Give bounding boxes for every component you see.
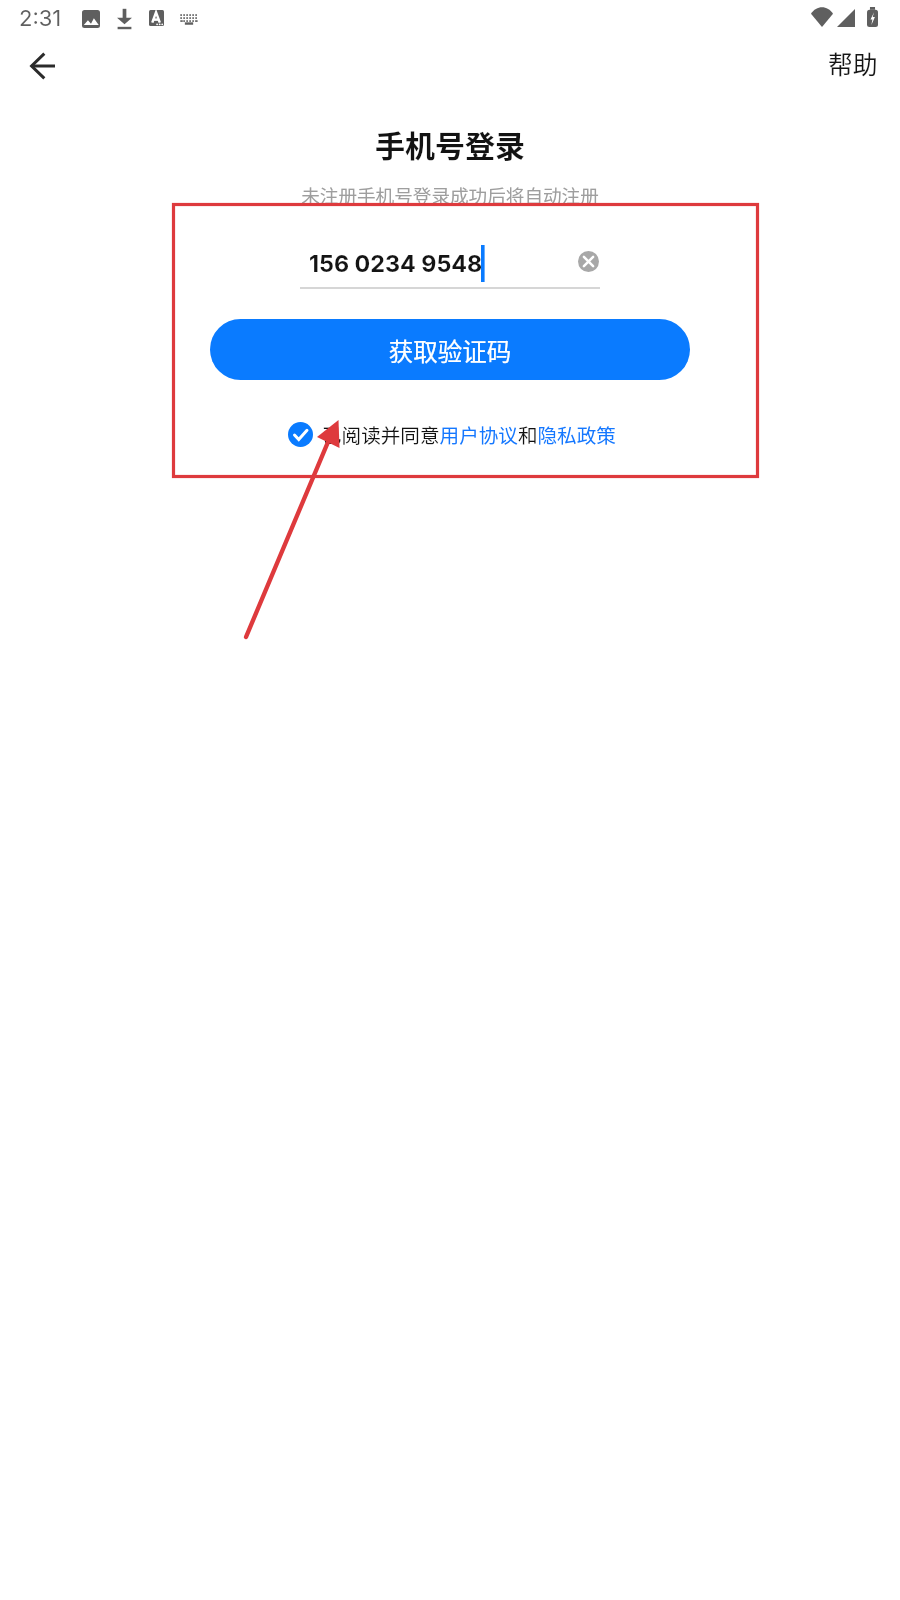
button[interactable]: 获取验证码 xyxy=(210,319,690,380)
staticText: 已阅读并同意用户协议和隐私政策 xyxy=(322,420,616,448)
button[interactable]: 帮助 xyxy=(814,37,888,93)
staticText: 156 0234 9548 xyxy=(309,249,483,277)
staticText: 帮助 xyxy=(828,45,878,81)
button[interactable]: Clear text xyxy=(568,241,608,281)
staticText: 未注册手机号登录成功后将自动注册 xyxy=(0,181,900,208)
button[interactable]: 已阅读并同意用户协议和隐私政策 xyxy=(283,415,623,453)
staticText: 2:31 xyxy=(19,5,62,32)
button[interactable]: Back xyxy=(20,44,64,88)
staticText: 手机号登录 xyxy=(0,122,900,165)
staticText: 获取验证码 xyxy=(210,333,690,368)
